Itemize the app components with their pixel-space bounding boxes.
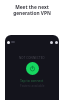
staticText: Tap to connect <box>20 78 44 83</box>
button[interactable]: Connect <box>26 62 39 75</box>
button[interactable]: Notifications <box>50 41 53 44</box>
staticText: Fastest available <box>20 84 45 88</box>
button[interactable]: Settings <box>55 41 58 44</box>
button[interactable]: Account <box>7 41 10 44</box>
staticText: Meet the next generation VPN <box>13 4 51 16</box>
staticText: NOT CONNECTED <box>19 56 45 60</box>
